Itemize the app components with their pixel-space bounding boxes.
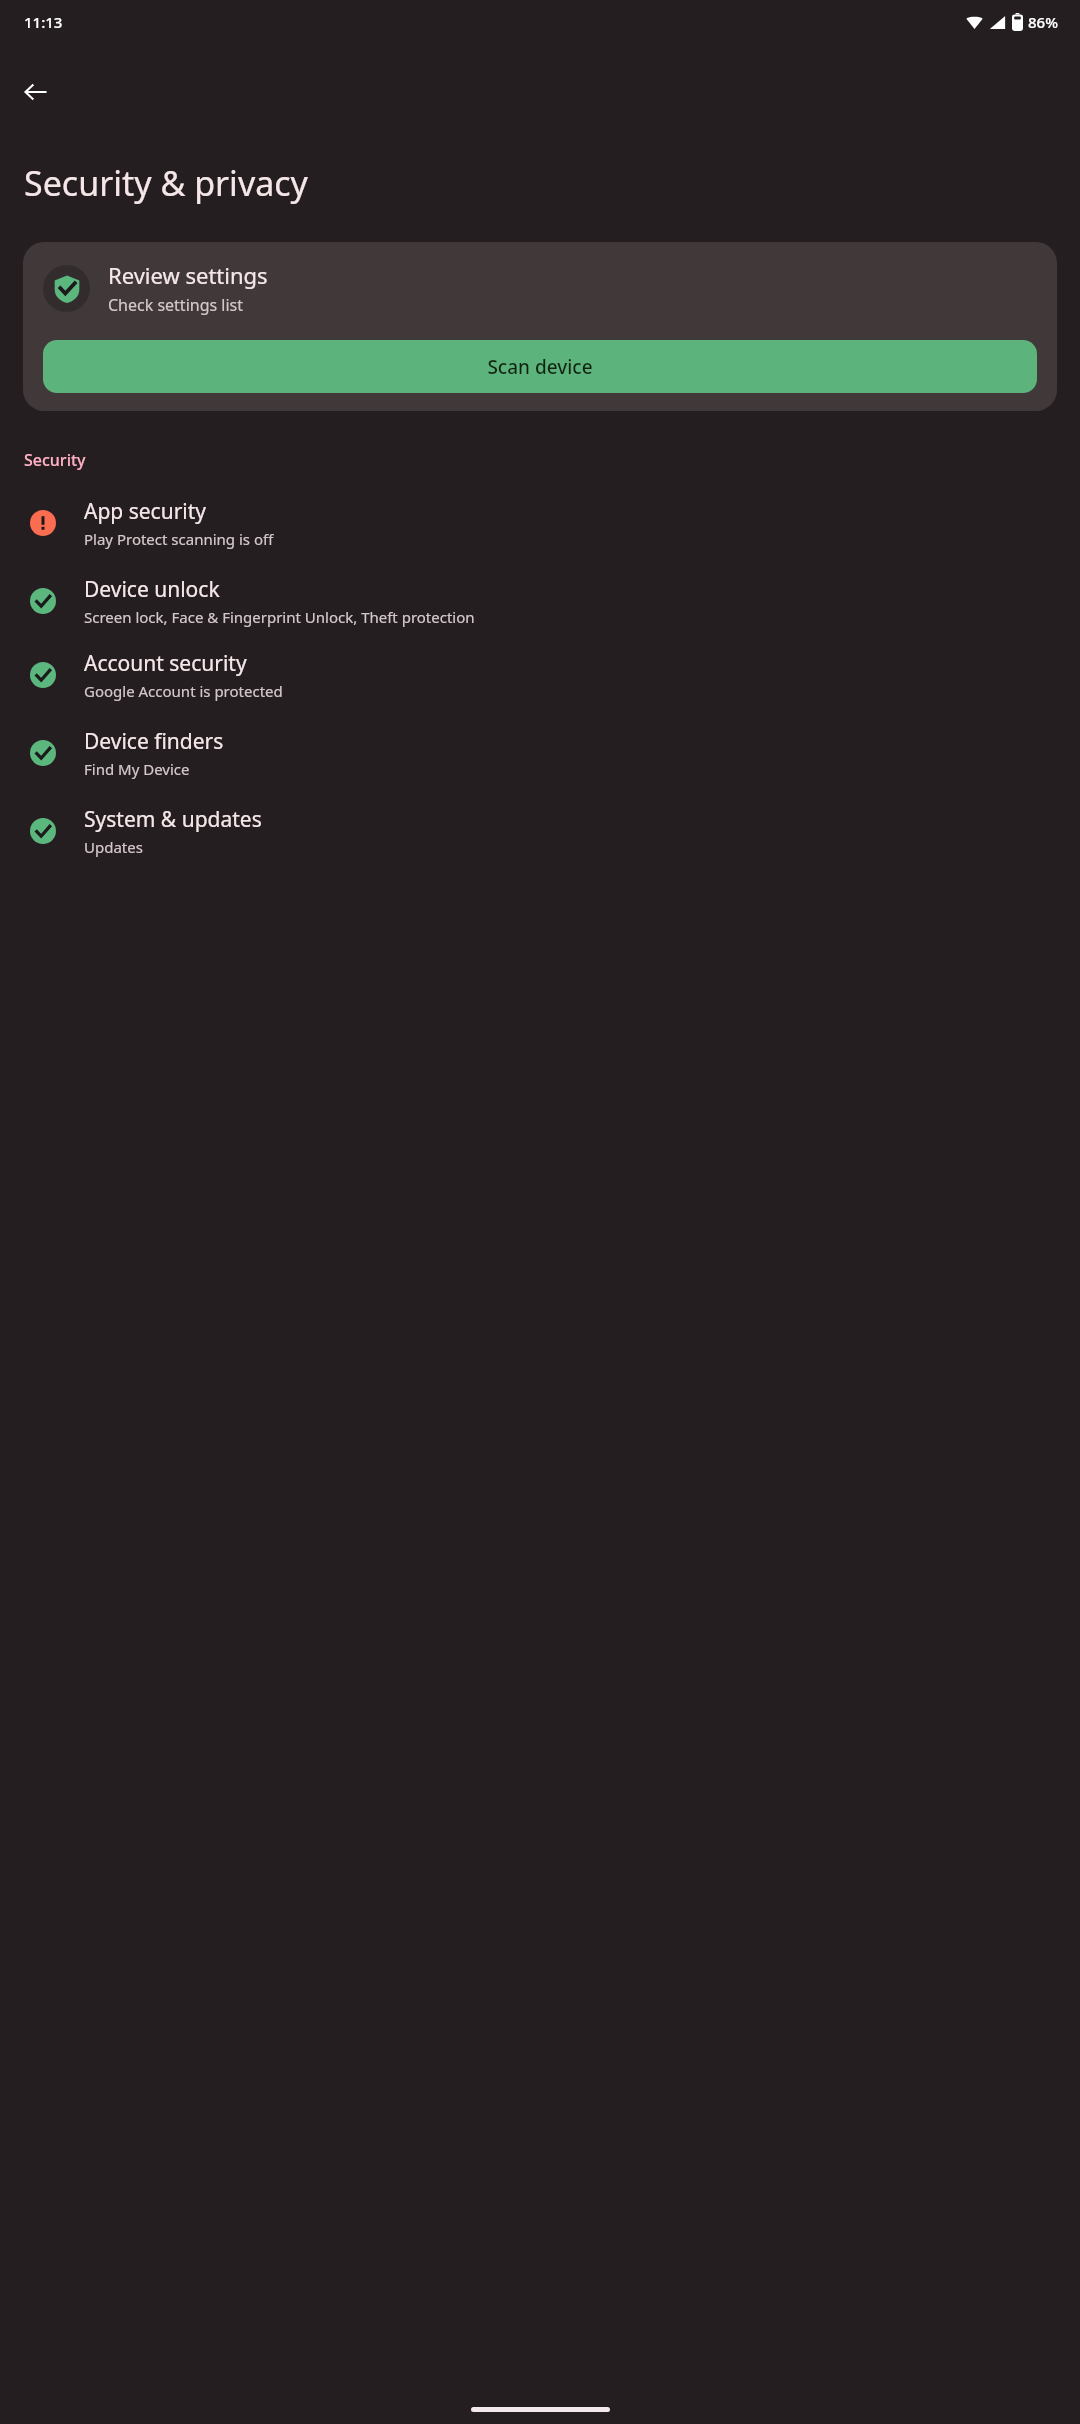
staticText: Google Account is protected bbox=[84, 681, 283, 701]
staticText: Screen lock, Face & Fingerprint Unlock, … bbox=[84, 607, 475, 627]
staticText: 11:13 bbox=[24, 12, 63, 32]
button[interactable]: System & updates bbox=[0, 805, 1080, 857]
staticText: Security bbox=[24, 449, 86, 471]
staticText: Review settings bbox=[108, 260, 268, 290]
staticText: Device unlock bbox=[84, 575, 220, 604]
button[interactable]: App security bbox=[0, 497, 1080, 549]
button[interactable]: Account security bbox=[0, 649, 1080, 701]
button[interactable]: Device unlock bbox=[0, 575, 1080, 627]
staticText: Find My Device bbox=[84, 759, 190, 779]
button[interactable]: Device finders bbox=[0, 727, 1080, 779]
button[interactable]: Scan device bbox=[43, 340, 1037, 393]
staticText: System & updates bbox=[84, 805, 262, 834]
staticText: Device finders bbox=[84, 727, 224, 756]
staticText: Scan device bbox=[487, 354, 593, 380]
staticText: Account security bbox=[84, 649, 247, 678]
staticText: Check settings list bbox=[108, 294, 244, 316]
staticText: Security & privacy bbox=[24, 160, 308, 206]
button[interactable]: Back bbox=[10, 66, 62, 118]
staticText: 86% bbox=[1028, 12, 1058, 32]
button[interactable]: Review settings bbox=[23, 242, 1057, 411]
staticText: Updates bbox=[84, 837, 143, 857]
staticText: App security bbox=[84, 497, 207, 526]
staticText: Play Protect scanning is off bbox=[84, 529, 274, 549]
